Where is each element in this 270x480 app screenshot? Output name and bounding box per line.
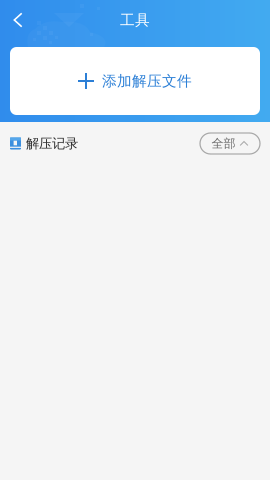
staticText: 添加解压文件 [102, 72, 192, 90]
button[interactable]: 全部 [200, 133, 260, 154]
button[interactable]: 添加解压文件 [10, 47, 260, 115]
staticText: 解压记录 [26, 135, 78, 152]
staticText: 全部 [211, 136, 235, 151]
staticText: 工具 [120, 11, 150, 29]
button[interactable]: Back [0, 0, 36, 40]
